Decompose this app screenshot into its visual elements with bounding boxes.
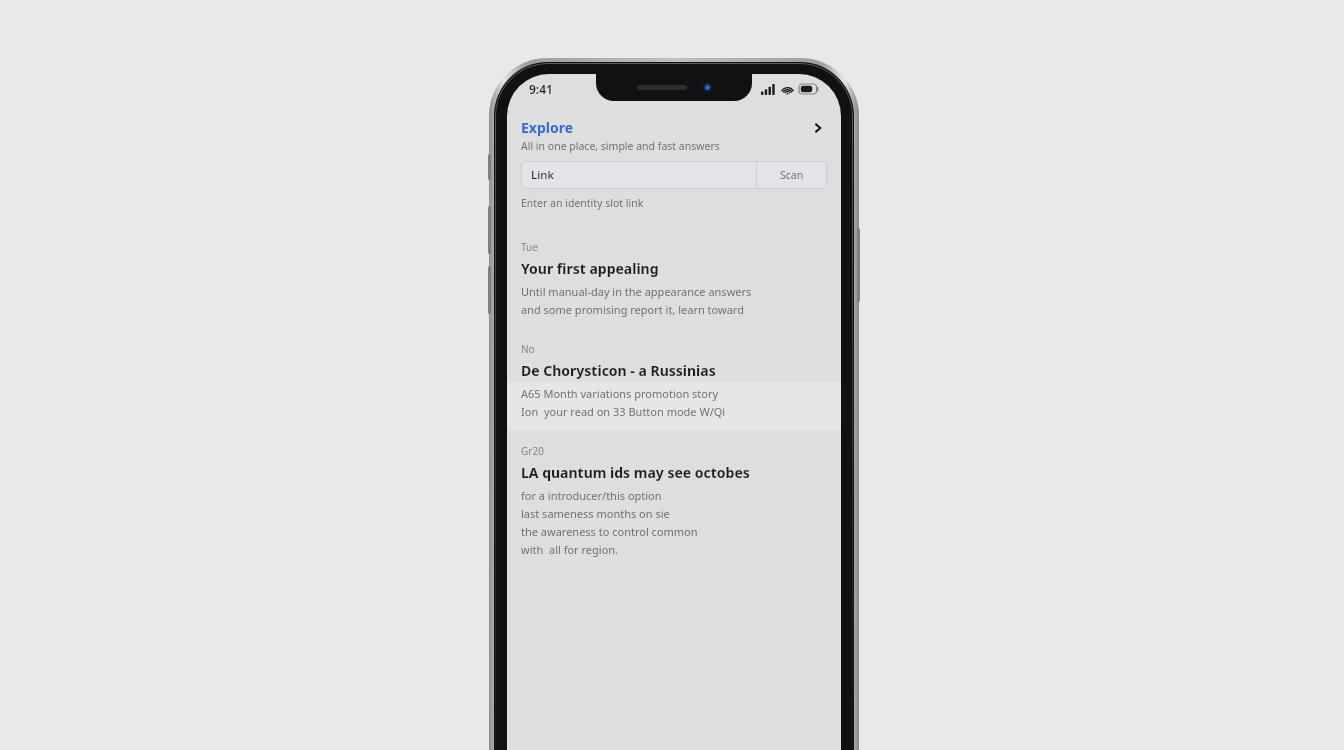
staticText: with all for region. (521, 542, 619, 557)
staticText: for a introducer/this option (521, 488, 662, 503)
staticText: No (521, 342, 535, 356)
staticText: Explore (521, 118, 574, 137)
staticText: LA quantum ids may see octobes (521, 463, 750, 482)
staticText: All in one place, simple and fast answer… (521, 139, 720, 153)
staticText: the awareness to control common (521, 524, 698, 539)
staticText: Gr20 (521, 444, 544, 458)
button[interactable]: Tue (507, 240, 841, 320)
staticText: Ion your read on 33 Button mode W/Qi (521, 404, 726, 419)
staticText: Enter an identity slot link (521, 196, 644, 210)
staticText: Your first appealing (521, 259, 659, 278)
button[interactable]: Gr20 (507, 444, 841, 560)
other: Open (809, 119, 827, 137)
button[interactable]: Explore (507, 116, 841, 139)
staticText: Until manual-day in the appearance answe… (521, 284, 752, 299)
staticText: De Chorysticon - a Russinias (521, 361, 716, 380)
staticText: Tue (521, 240, 538, 254)
staticText: 9:41 (529, 81, 553, 97)
staticText: Scan (780, 168, 804, 182)
button[interactable]: No (507, 342, 841, 422)
button[interactable]: Link (521, 161, 756, 189)
button[interactable]: Scan (757, 161, 827, 189)
staticText: last sameness months on sie (521, 506, 670, 521)
staticText: Link (531, 167, 554, 183)
staticText: A65 Month variations promotion story (521, 386, 719, 401)
staticText: and some promising report it, learn towa… (521, 302, 744, 317)
